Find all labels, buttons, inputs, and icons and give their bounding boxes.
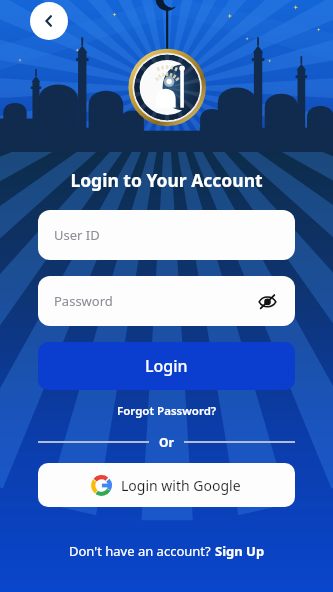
staticText: Forgot Password? xyxy=(117,403,217,419)
staticText: Or xyxy=(159,434,174,450)
button[interactable]: User ID xyxy=(38,210,295,260)
staticText: Login to Your Account xyxy=(70,168,263,192)
button[interactable]: Password xyxy=(38,276,295,326)
button[interactable]: Login with Google xyxy=(38,463,295,507)
button[interactable]: Back xyxy=(30,2,68,40)
staticText: Login with Google xyxy=(121,476,241,495)
staticText: Don't have an account? xyxy=(69,542,215,560)
staticText: Password xyxy=(54,292,113,310)
button[interactable]: Show password xyxy=(255,289,279,313)
button[interactable]: Login xyxy=(38,342,295,390)
staticText: Login xyxy=(145,355,188,377)
staticText: User ID xyxy=(54,226,100,244)
button[interactable]: Forgot Password? xyxy=(111,401,223,421)
button[interactable]: Don't have an account? xyxy=(61,538,273,564)
staticText: Sign Up xyxy=(215,542,265,560)
